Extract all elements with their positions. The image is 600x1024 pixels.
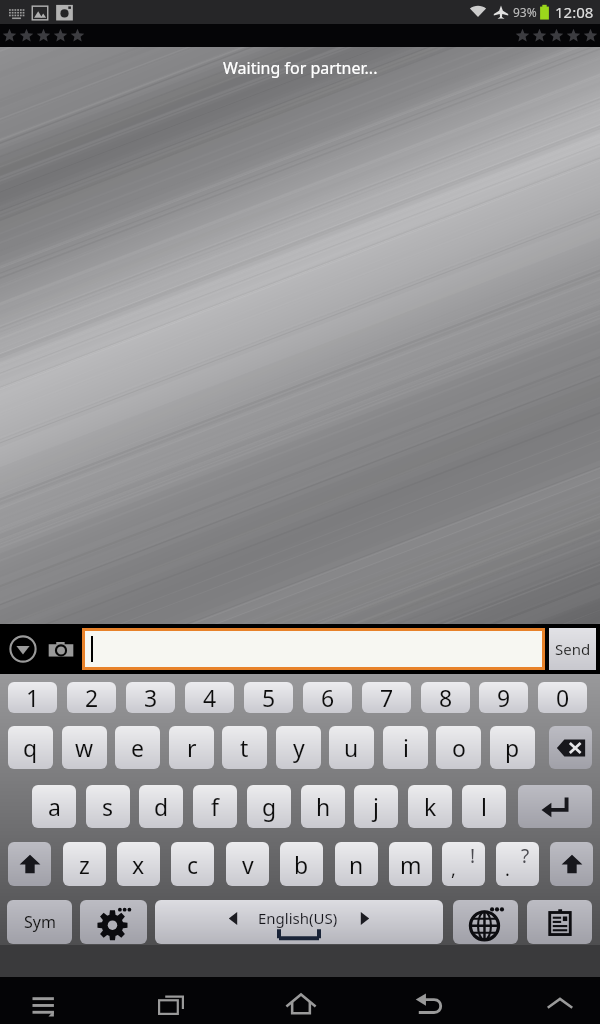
button[interactable]: 1 <box>8 682 57 713</box>
button[interactable]: r <box>169 726 214 769</box>
staticText: x <box>132 849 145 880</box>
button[interactable]: v <box>226 842 269 886</box>
button[interactable]: English(US) <box>155 900 443 944</box>
button[interactable]: c <box>171 842 214 886</box>
staticText: l <box>481 791 487 822</box>
button[interactable]: p <box>490 726 535 769</box>
button[interactable]: t <box>222 726 267 769</box>
button[interactable]: h <box>301 785 345 828</box>
staticText: f <box>211 791 219 822</box>
button[interactable]: e <box>115 726 160 769</box>
button[interactable] <box>85 631 542 667</box>
button[interactable]: 4 <box>185 682 234 713</box>
button[interactable]: o <box>436 726 481 769</box>
staticText: , <box>451 857 456 882</box>
staticText: 8 <box>439 682 453 713</box>
staticText: y <box>293 732 305 763</box>
button[interactable]: Home <box>259 977 343 1024</box>
staticText: p <box>505 732 520 763</box>
staticText: c <box>187 849 199 880</box>
staticText: 4 <box>203 682 217 713</box>
staticText: ! <box>470 843 476 869</box>
staticText: a <box>48 791 61 822</box>
button[interactable]: y <box>276 726 321 769</box>
staticText: 7 <box>380 682 394 713</box>
button[interactable]: Expand <box>6 632 40 666</box>
staticText: q <box>23 732 38 763</box>
staticText: g <box>262 791 277 822</box>
button[interactable]: i <box>383 726 428 769</box>
button[interactable]: 7 <box>362 682 411 713</box>
button[interactable]: q <box>8 726 53 769</box>
button[interactable]: 3 <box>126 682 175 713</box>
staticText: o <box>452 732 466 763</box>
staticText: t <box>240 732 249 763</box>
staticText: 6 <box>321 682 335 713</box>
button[interactable]: x <box>117 842 160 886</box>
staticText: 0 <box>556 682 570 713</box>
staticText: 93% <box>513 4 537 20</box>
button[interactable]: m <box>389 842 432 886</box>
button[interactable]: d <box>139 785 183 828</box>
button[interactable]: l <box>462 785 506 828</box>
staticText: e <box>131 732 144 763</box>
staticText: r <box>187 732 197 763</box>
button[interactable]: 2 <box>67 682 116 713</box>
button[interactable]: Back <box>388 977 472 1024</box>
button[interactable]: 8 <box>421 682 470 713</box>
staticText: 9 <box>497 682 511 713</box>
button[interactable]: Camera <box>44 632 78 666</box>
staticText: n <box>349 849 364 880</box>
staticText: 3 <box>144 682 158 713</box>
staticText: . <box>505 857 510 882</box>
button[interactable]: 6 <box>303 682 352 713</box>
button[interactable]: s <box>86 785 130 828</box>
button[interactable]: Enter <box>518 785 592 828</box>
staticText: u <box>344 732 359 763</box>
button[interactable]: Backspace <box>549 726 592 769</box>
staticText: w <box>75 732 94 763</box>
button[interactable]: n <box>335 842 378 886</box>
staticText: z <box>79 849 90 880</box>
button[interactable]: Send <box>549 628 596 670</box>
staticText: ? <box>521 843 530 869</box>
button[interactable]: 0 <box>538 682 587 713</box>
button[interactable]: b <box>280 842 323 886</box>
staticText: Sym <box>24 911 56 933</box>
staticText: Send <box>555 639 591 659</box>
button[interactable]: f <box>193 785 237 828</box>
button[interactable]: u <box>329 726 374 769</box>
button[interactable]: Language <box>453 900 518 944</box>
button[interactable]: a <box>32 785 76 828</box>
staticText: j <box>373 791 379 822</box>
staticText: s <box>102 791 114 822</box>
staticText: English(US) <box>258 908 338 928</box>
button[interactable]: Expand <box>518 977 600 1024</box>
button[interactable]: 5 <box>244 682 293 713</box>
staticText: 5 <box>262 682 276 713</box>
staticText: 1 <box>26 682 40 713</box>
staticText: k <box>424 791 437 822</box>
button[interactable]: Clipboard <box>527 900 592 944</box>
staticText: 2 <box>85 682 99 713</box>
button[interactable]: Shift <box>8 842 51 886</box>
button[interactable]: Shift <box>550 842 593 886</box>
staticText: h <box>316 791 331 822</box>
staticText: v <box>242 849 254 880</box>
button[interactable]: Menu <box>0 977 84 1024</box>
button[interactable]: j <box>354 785 398 828</box>
button[interactable]: w <box>62 726 107 769</box>
button[interactable]: g <box>247 785 291 828</box>
button[interactable]: Settings <box>80 900 147 944</box>
button[interactable]: , <box>442 842 485 886</box>
button[interactable]: Recents <box>129 977 213 1024</box>
button[interactable]: . <box>496 842 539 886</box>
button[interactable]: Sym <box>7 900 72 944</box>
button[interactable]: k <box>408 785 452 828</box>
staticText: 12:08 <box>555 2 594 22</box>
staticText: Waiting for partner... <box>223 57 378 79</box>
staticText: b <box>294 849 309 880</box>
button[interactable]: z <box>63 842 106 886</box>
button[interactable]: 9 <box>479 682 528 713</box>
staticText: d <box>154 791 169 822</box>
